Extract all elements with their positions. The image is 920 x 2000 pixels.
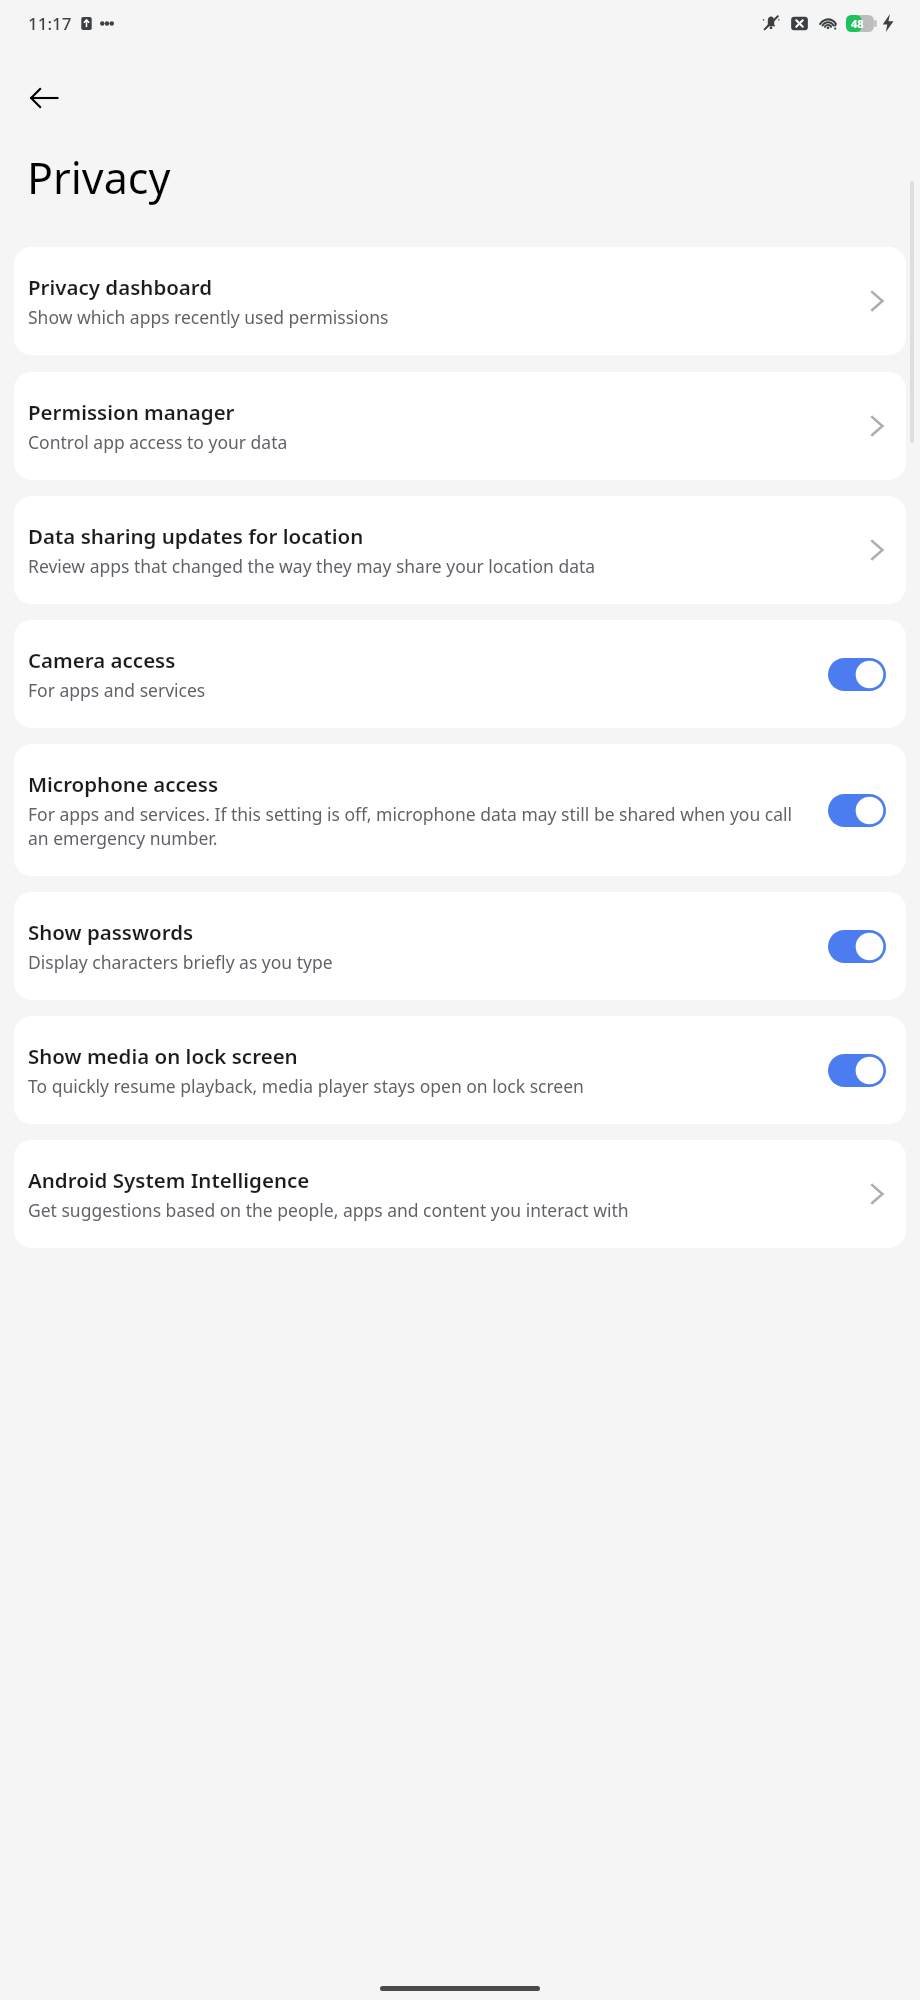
staticText: For apps and services xyxy=(28,678,206,702)
staticText: Get suggestions based on the people, app… xyxy=(28,1198,629,1222)
staticText: 48 xyxy=(851,16,864,31)
button[interactable]: Android System Intelligence xyxy=(14,1140,906,1248)
button[interactable]: Data sharing updates for location xyxy=(14,496,906,604)
staticText: Review apps that changed the way they ma… xyxy=(28,554,596,578)
button[interactable]: Microphone access xyxy=(14,744,906,876)
staticText: Microphone access xyxy=(28,770,219,798)
staticText: To quickly resume playback, media player… xyxy=(28,1074,584,1098)
staticText: Show media on lock screen xyxy=(28,1042,298,1070)
button[interactable]: Show passwords xyxy=(14,892,906,1000)
button[interactable]: Back xyxy=(16,70,72,126)
staticText: Show which apps recently used permission… xyxy=(28,305,389,329)
staticText: Camera access xyxy=(28,646,176,674)
staticText: Display characters briefly as you type xyxy=(28,950,333,974)
staticText: Data sharing updates for location xyxy=(28,522,364,550)
button[interactable]: Show media on lock screen xyxy=(14,1016,906,1124)
staticText: For apps and services. If this setting i… xyxy=(28,802,816,850)
button[interactable]: Permission manager xyxy=(14,372,906,480)
staticText: Android System Intelligence xyxy=(28,1166,310,1194)
staticText: 11:17 xyxy=(28,12,72,35)
button[interactable]: Camera access xyxy=(14,620,906,728)
staticText: Show passwords xyxy=(28,918,194,946)
staticText: Control app access to your data xyxy=(28,430,288,454)
staticText: Permission manager xyxy=(28,398,235,426)
staticText: Privacy dashboard xyxy=(28,273,213,301)
staticText: Privacy xyxy=(27,148,171,207)
button[interactable]: Privacy dashboard xyxy=(14,247,906,355)
